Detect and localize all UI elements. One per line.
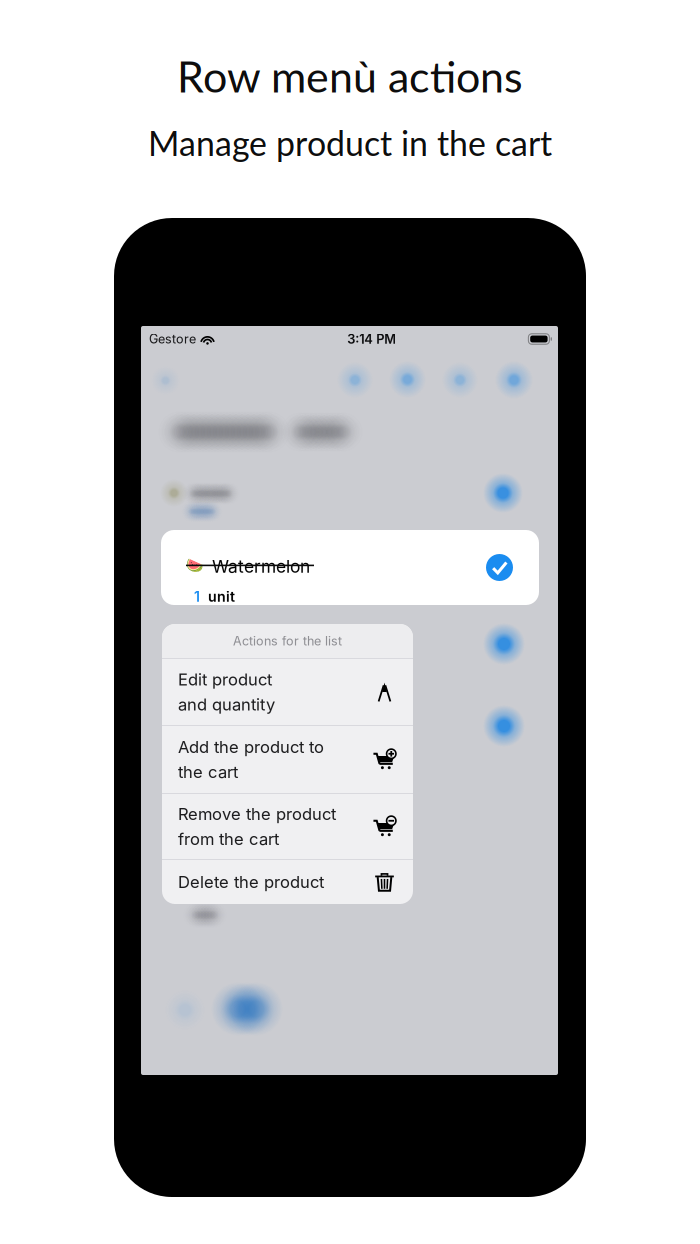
staticText: Delete the product — [178, 872, 324, 892]
staticText: 3:14 PM — [347, 331, 396, 347]
button[interactable]: Remove the product — [162, 794, 413, 859]
staticText: Edit product — [178, 669, 272, 689]
button[interactable]: Add the product to — [162, 726, 413, 793]
staticText: the cart — [178, 762, 238, 782]
staticText: Row menù actions — [177, 50, 523, 101]
staticText: unit — [208, 588, 235, 605]
staticText: 1 — [194, 588, 200, 605]
staticText: Watermelon — [212, 556, 310, 577]
staticText: Actions for the list — [233, 633, 342, 649]
button[interactable]: 🍉 — [161, 530, 539, 605]
staticText: Add the product to — [178, 737, 324, 757]
staticText: Remove the product — [178, 804, 336, 824]
staticText: Manage product in the cart — [148, 122, 552, 163]
staticText: 🍉 — [186, 557, 203, 573]
button[interactable]: Delete the product — [162, 860, 413, 904]
staticText: and quantity — [178, 694, 275, 714]
staticText: Gestore — [149, 331, 196, 347]
button[interactable]: Edit product — [162, 659, 413, 725]
staticText: from the cart — [178, 829, 279, 849]
